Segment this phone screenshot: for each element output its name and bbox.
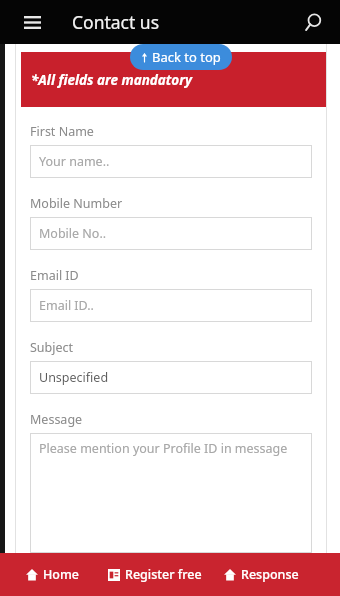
staticText: First Name bbox=[30, 123, 94, 140]
button[interactable]: Mobile No.. bbox=[30, 217, 312, 250]
staticText: *All fields are mandatory bbox=[31, 71, 192, 89]
staticText: Contact us bbox=[72, 10, 160, 34]
button[interactable]: Email ID.. bbox=[30, 289, 312, 322]
staticText: Home bbox=[43, 566, 80, 583]
staticText: Please mention your Profile ID in messag… bbox=[39, 440, 288, 457]
button[interactable]: Please mention your Profile ID in messag… bbox=[30, 433, 312, 553]
staticText: Your name.. bbox=[39, 153, 110, 170]
button[interactable]: Register free bbox=[106, 560, 204, 589]
button[interactable]: Your name.. bbox=[30, 145, 312, 178]
button[interactable]: Menu bbox=[14, 4, 50, 40]
staticText: Email ID bbox=[30, 267, 79, 284]
staticText: Back to top bbox=[152, 48, 221, 66]
button[interactable]: Back to top bbox=[130, 44, 232, 70]
button[interactable]: Home bbox=[24, 560, 82, 589]
button[interactable]: Unspecified bbox=[30, 361, 312, 394]
staticText: Mobile No.. bbox=[39, 225, 107, 242]
staticText: Message bbox=[30, 411, 83, 428]
staticText: Subject bbox=[30, 339, 74, 356]
staticText: Register free bbox=[125, 566, 202, 583]
button[interactable]: Search bbox=[294, 4, 330, 40]
staticText: Response bbox=[241, 566, 299, 583]
button[interactable]: Response bbox=[222, 560, 301, 589]
staticText: Email ID.. bbox=[39, 297, 94, 314]
staticText: Mobile Number bbox=[30, 195, 123, 212]
staticText: Unspecified bbox=[39, 369, 109, 386]
